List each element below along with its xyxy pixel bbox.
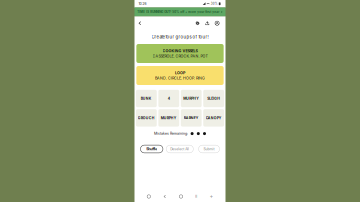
button[interactable]: Share <box>202 16 212 30</box>
button[interactable]: MURPHY <box>158 109 179 127</box>
button[interactable]: Shuffle <box>140 145 163 153</box>
button[interactable]: BARNEY <box>181 109 202 127</box>
staticText: II <box>195 194 197 198</box>
staticText: GROUCH <box>138 116 155 120</box>
button[interactable]: Deselect All <box>166 145 193 153</box>
staticText: BUNK <box>141 96 152 101</box>
button[interactable]: MURPHY <box>181 90 202 107</box>
staticText: Shuffle <box>146 147 157 151</box>
staticText: 30% <box>211 2 218 5</box>
button[interactable]: 4 <box>158 90 179 107</box>
staticText: TIME IS RUNNING OUT! 50% off + more your… <box>137 10 219 14</box>
staticText: Submit <box>204 147 215 151</box>
button[interactable]: Back <box>134 16 145 30</box>
staticText: 10:26 <box>138 2 146 6</box>
button[interactable]: CANOPY <box>203 109 224 127</box>
staticText: Mistakes Remaining: <box>154 132 188 136</box>
button[interactable]: BUNK <box>136 90 157 107</box>
staticText: CASSEROLE, CROCK, PAN, POT <box>152 54 207 58</box>
button[interactable]: Account <box>212 16 222 30</box>
staticText: BARNEY <box>184 116 199 120</box>
staticText: Deselect All <box>170 147 189 151</box>
staticText: MURPHY <box>183 96 199 101</box>
staticText: SLEIGH <box>207 96 220 101</box>
staticText: MURPHY <box>161 116 177 120</box>
staticText: COOKING VESSELS <box>162 49 197 53</box>
staticText: CANOPY <box>206 116 222 120</box>
staticText: 4 <box>168 96 170 101</box>
staticText: ✛ <box>210 195 213 198</box>
button[interactable]: Submit <box>199 145 220 153</box>
staticText: Create four groups of four! <box>151 34 208 39</box>
button[interactable]: SLEIGH <box>203 90 224 107</box>
button[interactable]: GROUCH <box>136 109 157 127</box>
button[interactable]: Settings <box>193 16 202 30</box>
staticText: LOOP <box>175 71 185 75</box>
staticText: BAND, CIRCLE, HOOP, RING <box>155 76 205 80</box>
